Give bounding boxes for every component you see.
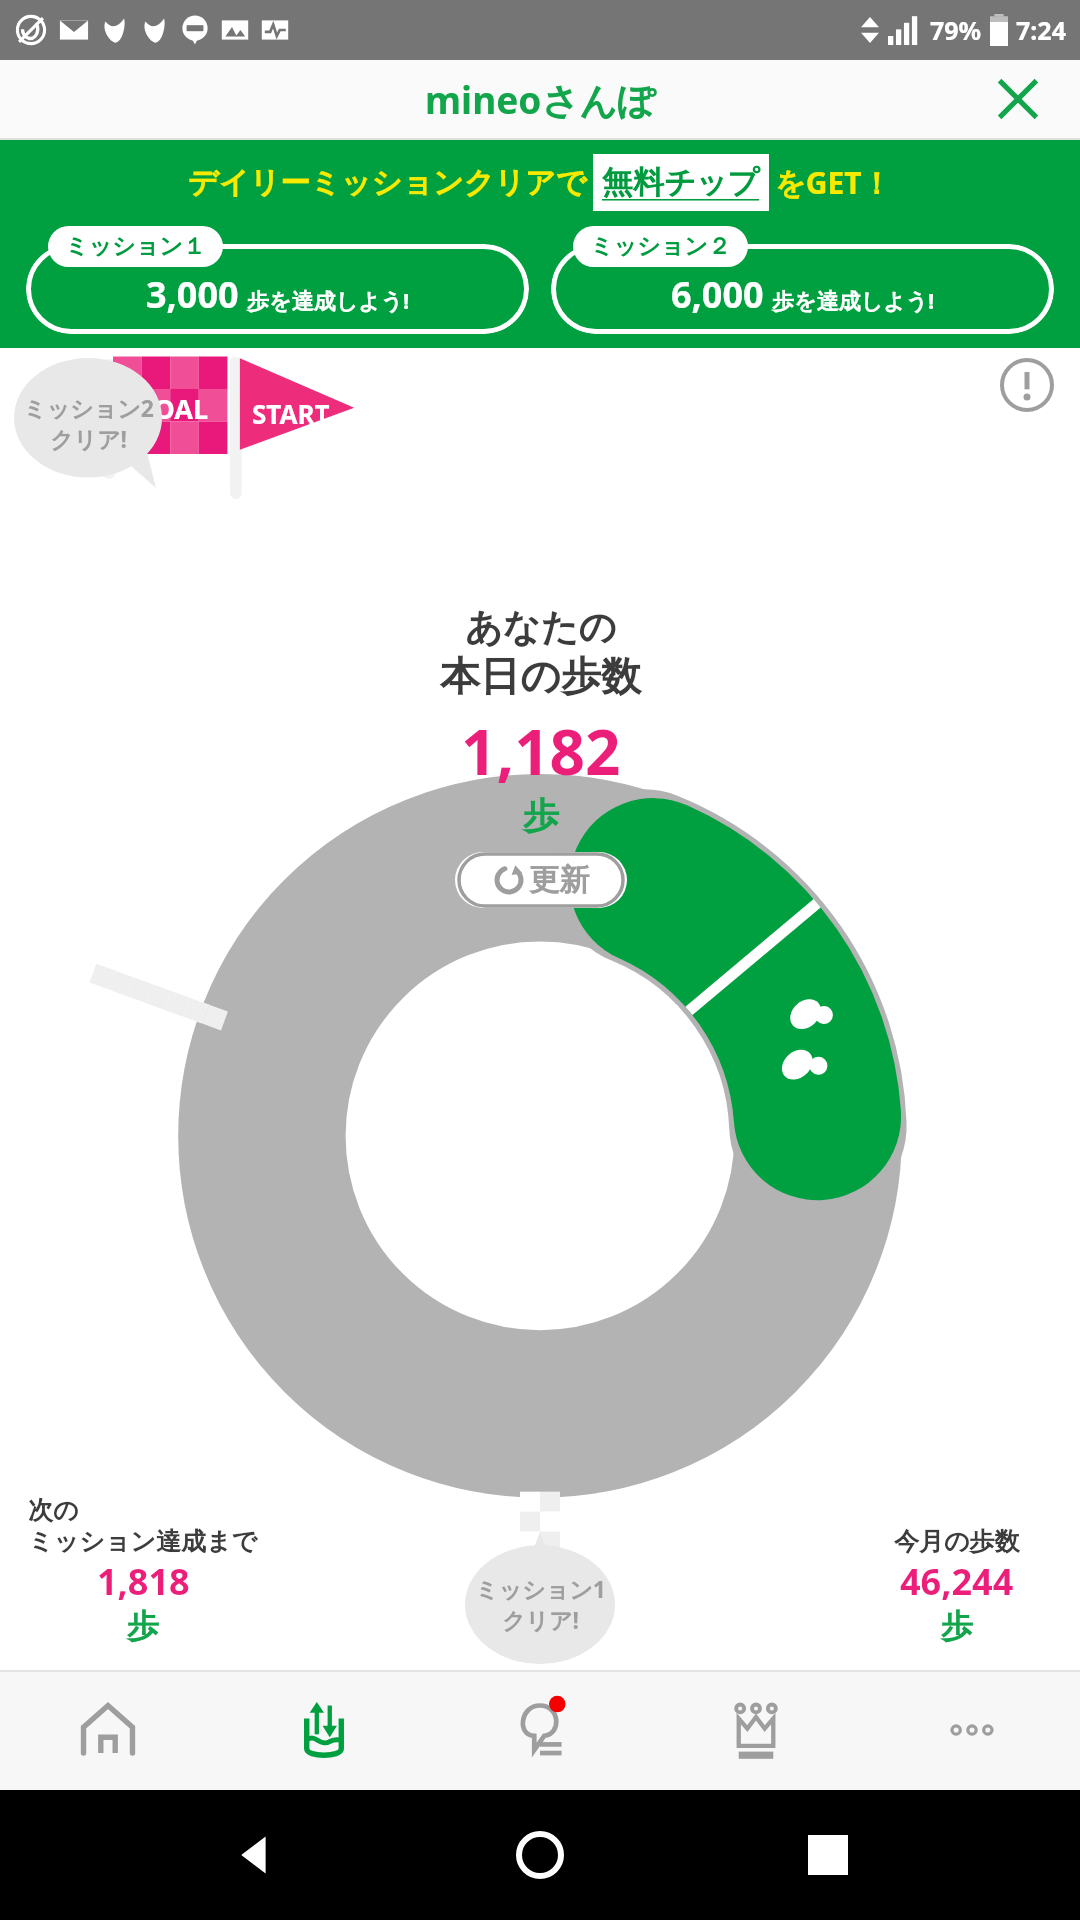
staticText: START	[252, 396, 330, 431]
staticText: 7:24	[1016, 13, 1066, 47]
staticText: 歩	[127, 1606, 159, 1646]
button[interactable]: Rank	[648, 1670, 864, 1790]
staticText: 46,244	[900, 1557, 1014, 1606]
staticText: 歩を達成しよう!	[247, 285, 410, 315]
staticText: 無料チップ	[602, 163, 760, 202]
staticText: ミッション達成まで	[28, 1526, 258, 1557]
button[interactable]: 更新	[455, 852, 627, 908]
button[interactable]: Recents	[793, 1820, 863, 1890]
staticText: 歩を達成しよう!	[772, 285, 935, 315]
staticText: 1,818	[97, 1557, 190, 1606]
button[interactable]: 6,000	[551, 226, 1054, 334]
staticText: ミッション2	[23, 392, 154, 423]
button[interactable]: Home	[505, 1820, 575, 1890]
button[interactable]: More	[864, 1670, 1080, 1790]
staticText: 本日の歩数	[440, 651, 641, 701]
button[interactable]: Data	[216, 1670, 432, 1790]
staticText: 更新	[529, 861, 589, 899]
staticText: ミッション1	[475, 1573, 606, 1604]
button[interactable]: Close	[986, 67, 1050, 131]
staticText: 6,000	[671, 270, 764, 319]
staticText: クリア!	[502, 1604, 580, 1635]
staticText: 歩	[523, 793, 559, 838]
staticText: あなたの	[465, 604, 617, 651]
staticText: 3,000	[146, 270, 239, 319]
staticText: 1,182	[461, 709, 621, 793]
staticText: 今月の歩数	[894, 1526, 1020, 1557]
staticText: 歩	[941, 1606, 973, 1646]
button[interactable]: Chat	[432, 1670, 648, 1790]
button[interactable]: Information	[1000, 358, 1054, 412]
staticText: ミッション２	[590, 232, 731, 261]
button[interactable]: Home	[0, 1670, 216, 1790]
staticText: デイリーミッションクリアで	[188, 164, 587, 202]
staticText: 次の	[28, 1495, 79, 1526]
staticText: GOAL	[134, 390, 209, 427]
staticText: クリア!	[50, 423, 128, 454]
staticText: をGET！	[775, 162, 892, 203]
button[interactable]: Back	[218, 1820, 288, 1890]
staticText: 79%	[930, 13, 982, 47]
staticText: ミッション１	[65, 232, 206, 261]
staticText: mineoさんぽ	[425, 74, 656, 125]
button[interactable]: 3,000	[26, 226, 529, 334]
